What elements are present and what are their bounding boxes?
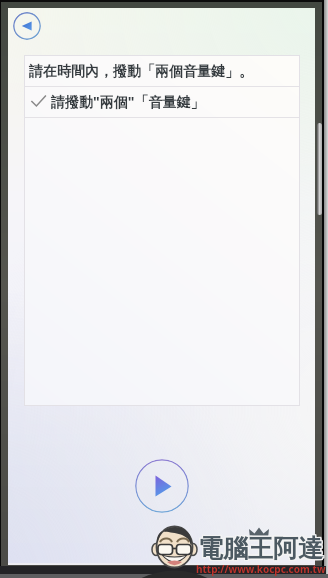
staticText: 電腦王阿達 (198, 533, 323, 564)
button[interactable]: Back (13, 12, 41, 40)
staticText: 電腦王阿達 (197, 532, 322, 563)
button[interactable]: Play (135, 459, 189, 513)
staticText: 電腦王阿達 (197, 534, 322, 565)
staticText: 電腦王阿達 (197, 533, 322, 564)
staticText: 電腦王阿達 (198, 532, 323, 563)
staticText: 電腦王阿達 (199, 533, 324, 564)
staticText: 電腦王阿達 (199, 534, 324, 565)
staticText: 請撥動"兩個"「音量鍵」 (51, 92, 205, 111)
staticText: 請在時間內，撥動「兩個音量鍵」。 (29, 63, 253, 81)
staticText: http://www.kocpc.com.tw (196, 562, 326, 576)
staticText: 電腦王阿達 (198, 534, 323, 565)
staticText: 電腦王阿達 (199, 532, 324, 563)
